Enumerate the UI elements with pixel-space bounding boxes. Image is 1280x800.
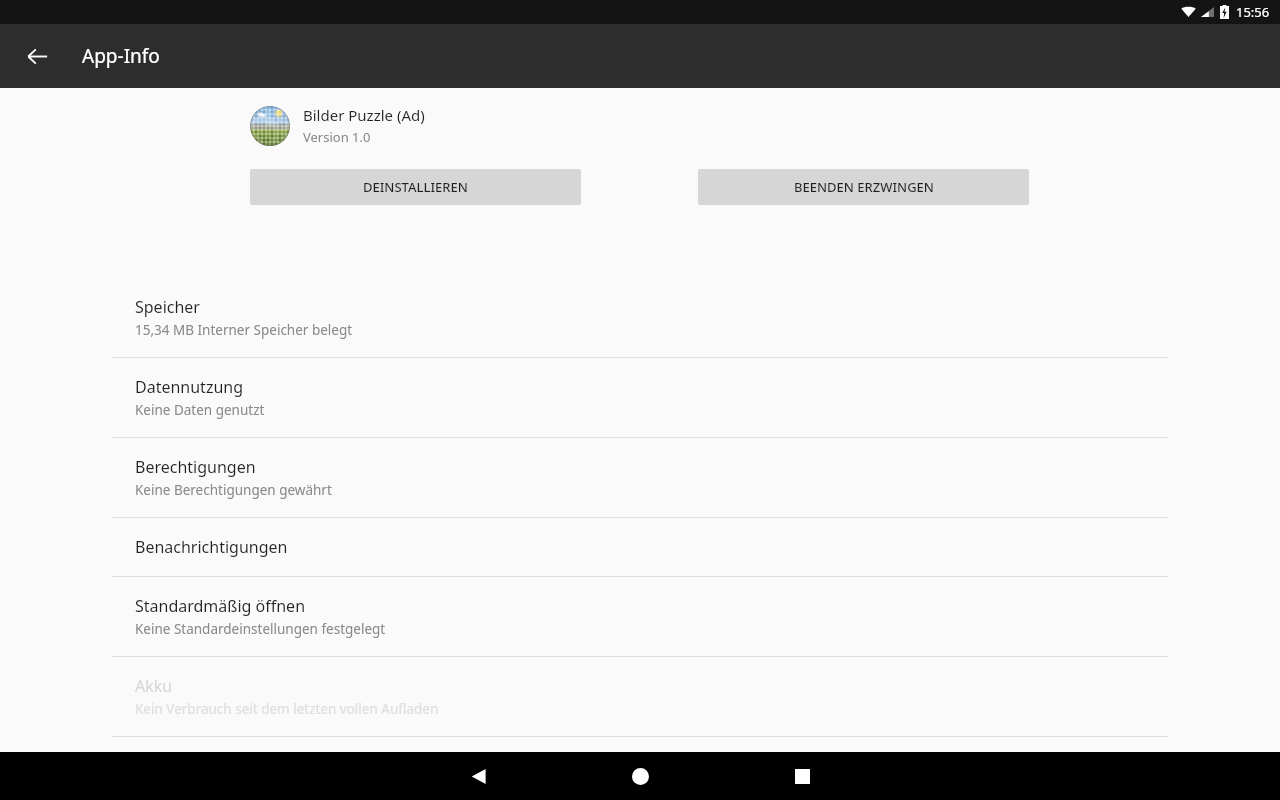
button[interactable]: Datennutzung — [0, 358, 1280, 437]
button[interactable]: Speicher — [0, 278, 1280, 357]
button[interactable]: Berechtigungen — [0, 438, 1280, 517]
staticText: DEINSTALLIEREN — [363, 178, 468, 196]
staticText: Keine Daten genutzt — [135, 401, 265, 419]
staticText: Speicher — [135, 296, 200, 318]
staticText: Datennutzung — [135, 376, 244, 398]
staticText: Bilder Puzzle (Ad) — [303, 105, 425, 125]
button[interactable]: Benachrichtigungen — [0, 518, 1280, 576]
staticText: Benachrichtigungen — [135, 536, 288, 558]
staticText: 15,34 MB Interner Speicher belegt — [135, 321, 353, 339]
staticText: Standardmäßig öffnen — [135, 595, 306, 617]
button[interactable]: Back — [454, 752, 502, 800]
button[interactable]: DEINSTALLIEREN — [250, 169, 581, 205]
button[interactable]: Home — [616, 752, 664, 800]
staticText: Version 1.0 — [303, 128, 371, 146]
staticText: Kein Verbrauch seit dem letzten vollen A… — [135, 700, 439, 718]
button[interactable]: Recent apps — [778, 752, 826, 800]
staticText: Akku — [135, 675, 173, 697]
staticText: 9,6 MB durchschnittlicher Speicherverbra… — [135, 780, 595, 782]
staticText: Keine Berechtigungen gewährt — [135, 481, 332, 499]
button[interactable]: Standardmäßig öffnen — [0, 577, 1280, 656]
button[interactable]: Back — [14, 33, 60, 79]
staticText: 15:56 — [1236, 3, 1270, 21]
staticText: Berechtigungen — [135, 456, 256, 478]
button[interactable]: BEENDEN ERZWINGEN — [698, 169, 1029, 205]
staticText: App-Info — [82, 43, 160, 69]
button[interactable]: Arbeitsspeicher — [0, 737, 1280, 800]
staticText: BEENDEN ERZWINGEN — [794, 178, 934, 196]
staticText: Keine Standardeinstellungen festgelegt — [135, 620, 386, 638]
